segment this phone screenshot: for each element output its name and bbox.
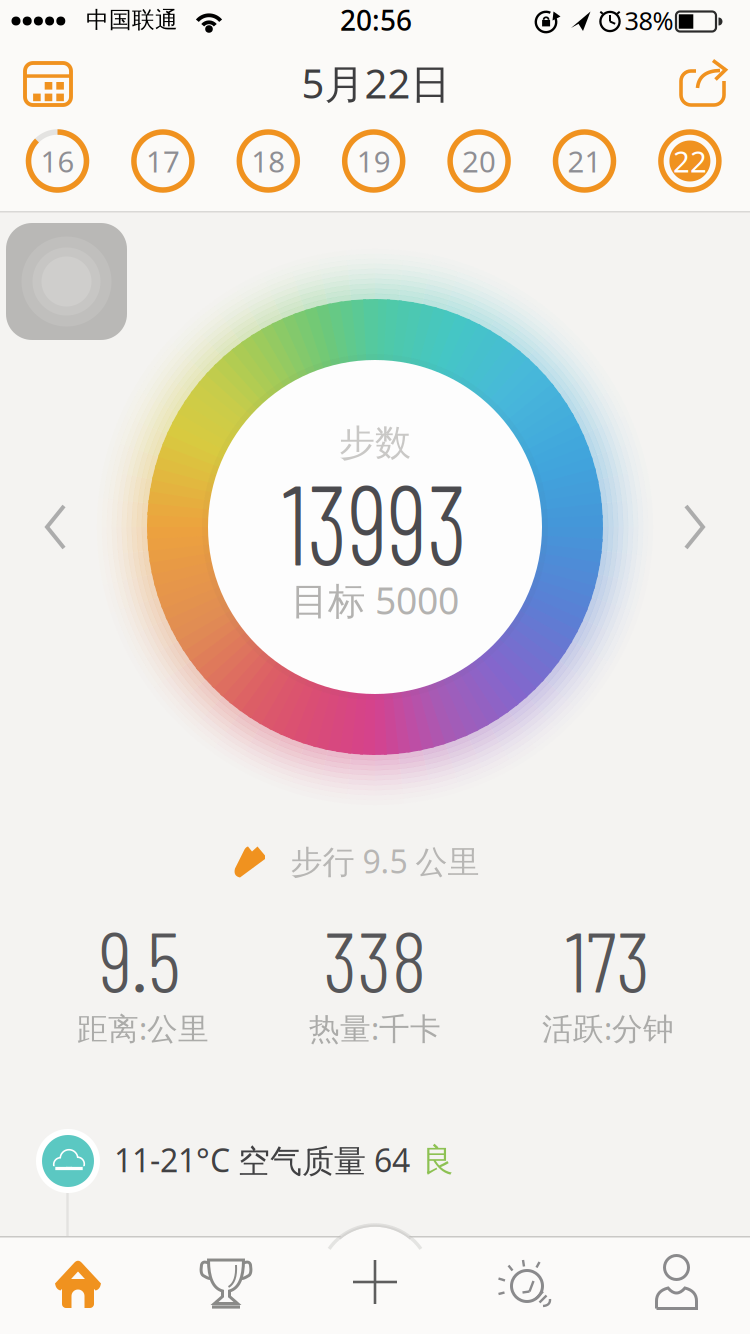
staticText: 173 xyxy=(565,909,650,1009)
button[interactable]: 18 xyxy=(232,125,304,197)
button[interactable]: Share xyxy=(664,52,728,116)
staticText: 16 xyxy=(40,141,74,180)
button[interactable]: 21 xyxy=(548,125,620,197)
button[interactable]: Achievements xyxy=(151,1236,301,1334)
staticText: 步行 9.5 公里 xyxy=(290,840,479,882)
staticText: 17 xyxy=(146,141,180,180)
button[interactable]: Profile xyxy=(602,1236,750,1334)
button[interactable]: 16 xyxy=(21,125,93,197)
staticText: 11-21°C 空气质量 64 xyxy=(114,1139,410,1181)
staticText: 18 xyxy=(251,141,285,180)
staticText: 活跃:分钟 xyxy=(542,1008,674,1048)
staticText: 9.5 xyxy=(99,909,181,1009)
staticText: 5月22日 xyxy=(301,56,450,109)
staticText: 步数 xyxy=(339,421,411,465)
staticText: 20:56 xyxy=(340,1,412,39)
button[interactable]: Tips xyxy=(454,1236,604,1334)
staticText: 20 xyxy=(462,141,496,180)
button[interactable]: 11-21°C 空气质量 64 xyxy=(0,1106,750,1216)
staticText: 热量:千卡 xyxy=(309,1008,441,1048)
button[interactable]: 20 xyxy=(443,125,515,197)
staticText: 22 xyxy=(673,141,707,180)
staticText: 中国联通 xyxy=(86,6,178,34)
button[interactable]: 19 xyxy=(338,125,410,197)
staticText: 338 xyxy=(323,909,426,1009)
staticText: 距离:公里 xyxy=(77,1008,209,1048)
staticText: 目标 5000 xyxy=(291,575,459,625)
staticText: 13993 xyxy=(272,454,478,588)
button[interactable]: Home xyxy=(3,1236,153,1334)
staticText: 21 xyxy=(567,141,601,180)
button[interactable]: Calendar xyxy=(16,52,80,116)
button[interactable]: 22 xyxy=(654,125,726,197)
staticText: 38% xyxy=(624,4,673,37)
staticText: 良 xyxy=(422,1140,454,1180)
button[interactable]: 17 xyxy=(127,125,199,197)
button[interactable]: Next day xyxy=(667,485,723,569)
button[interactable]: Previous day xyxy=(27,485,83,569)
staticText: 19 xyxy=(357,141,391,180)
button[interactable]: Add xyxy=(319,1222,431,1334)
